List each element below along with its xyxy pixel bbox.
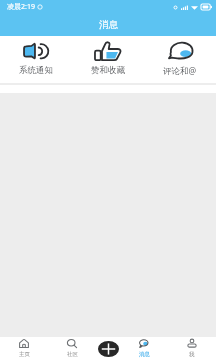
button[interactable]: 我 — [168, 337, 216, 360]
staticText: 赞和收藏 — [91, 65, 125, 76]
button[interactable]: 消息 — [120, 337, 168, 360]
button[interactable]: 评论和@ — [144, 36, 216, 83]
staticText: 凌晨2:19 — [7, 2, 35, 12]
staticText: 消息 — [139, 351, 150, 358]
button[interactable]: 赞和收藏 — [72, 36, 144, 83]
staticText: 我 — [189, 351, 195, 358]
staticText: 评论和@ — [163, 65, 197, 77]
button[interactable]: 社区 — [48, 337, 96, 360]
staticText: 社区 — [67, 351, 78, 358]
button[interactable]: Create post — [98, 341, 119, 357]
button[interactable]: 主页 — [0, 337, 48, 360]
staticText: 主页 — [19, 351, 30, 358]
staticText: 系统通知 — [19, 65, 53, 76]
button[interactable]: 系统通知 — [0, 36, 72, 83]
staticText: 消息 — [99, 19, 118, 31]
